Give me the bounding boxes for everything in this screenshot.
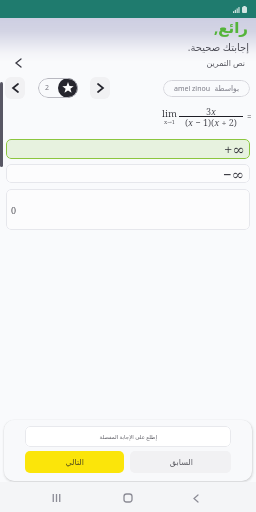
staticText: 2 (45, 83, 50, 93)
staticText: amel zinou (174, 84, 211, 94)
staticText: −∞ (223, 164, 245, 183)
staticText: إطلع على الإجابة المفصلة (99, 433, 157, 440)
button[interactable]: amel zinou (163, 80, 250, 97)
button[interactable]: Back (9, 54, 27, 72)
staticText: رائع, (214, 17, 248, 37)
staticText: x→1 (164, 118, 175, 125)
staticText: إجابتك صحيحة. (187, 40, 249, 54)
staticText: +∞ (224, 139, 245, 159)
button[interactable]: −∞ (6, 164, 250, 183)
button[interactable]: Next exercise (90, 77, 110, 99)
staticText: lim (162, 107, 177, 120)
button[interactable]: التالي (25, 451, 124, 473)
button[interactable]: 0 (6, 189, 250, 230)
button[interactable]: Previous exercise (5, 77, 25, 99)
staticText: 0 (11, 204, 17, 216)
button[interactable]: Recents (44, 486, 68, 510)
button[interactable]: السابق (130, 451, 231, 473)
button[interactable]: 2 (38, 78, 78, 98)
staticText: = (247, 111, 252, 122)
staticText: السابق (169, 458, 193, 467)
button[interactable]: Home (116, 486, 140, 510)
staticText: نص التمرين (206, 57, 245, 68)
staticText: بواسطة (214, 84, 239, 93)
staticText: التالي (65, 458, 84, 467)
button[interactable]: Back (184, 486, 208, 510)
button[interactable]: +∞ (6, 139, 250, 159)
staticText: (x − 1)(x + 2) (185, 116, 237, 128)
button[interactable]: إطلع على الإجابة المفصلة (25, 426, 231, 447)
staticText: 3x (206, 105, 216, 117)
